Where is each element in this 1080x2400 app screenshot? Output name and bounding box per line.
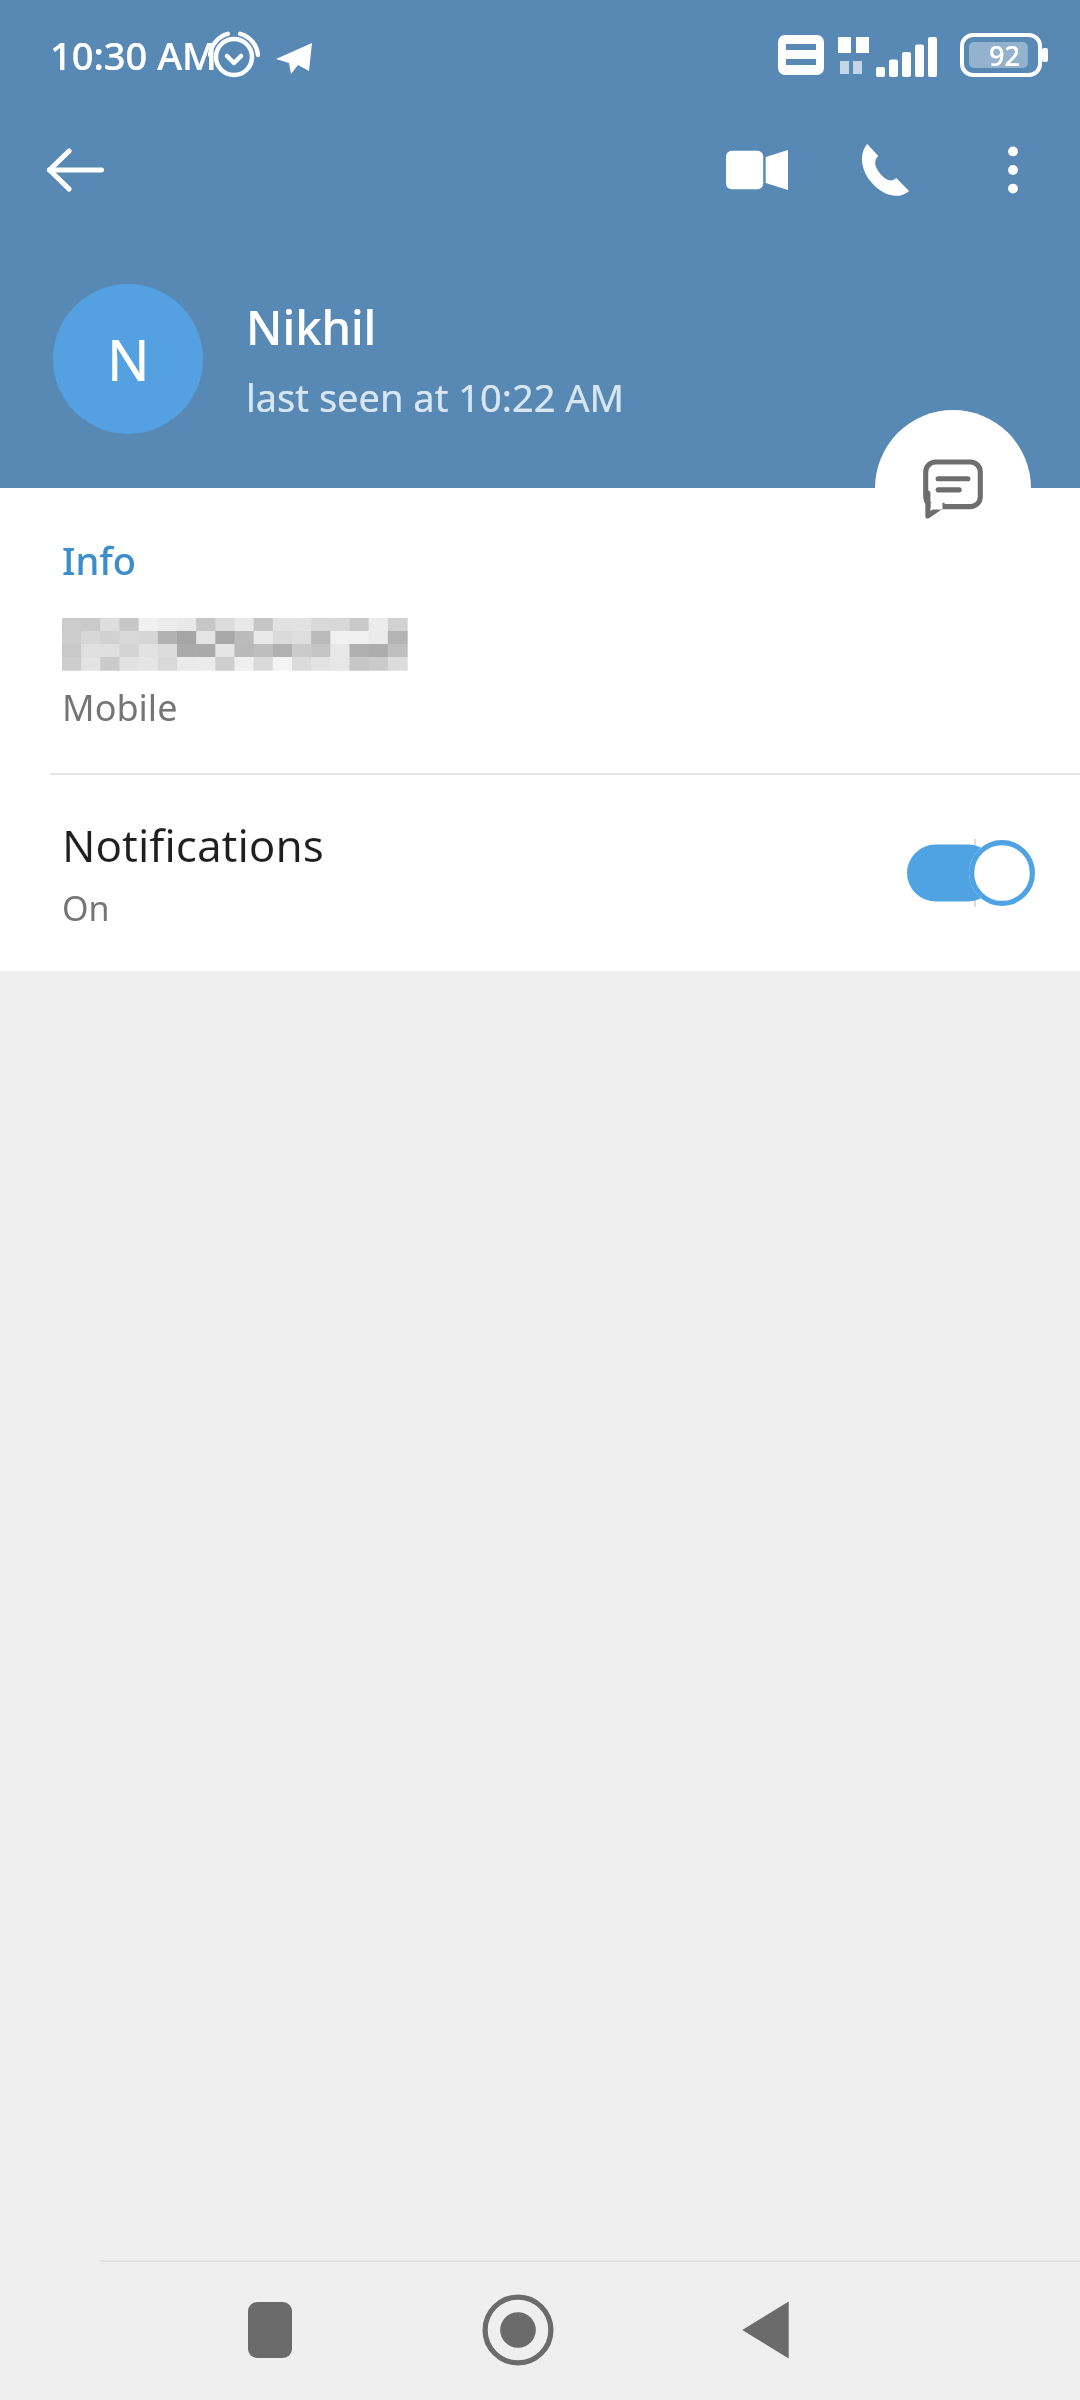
button[interactable]: Send message bbox=[875, 410, 1031, 566]
staticText: Nikhil bbox=[246, 295, 377, 359]
staticText: Mobile bbox=[62, 683, 178, 732]
staticText: Notifications bbox=[62, 815, 324, 875]
button[interactable]: Notifications bbox=[0, 775, 1080, 971]
button[interactable]: Back bbox=[20, 115, 130, 225]
button[interactable]: N bbox=[0, 230, 1080, 488]
staticText: last seen at 10:22 AM bbox=[246, 371, 625, 423]
staticText: N bbox=[107, 321, 150, 397]
staticText: 92 bbox=[989, 37, 1020, 74]
button[interactable]: Call bbox=[832, 115, 942, 225]
staticText: Info bbox=[62, 534, 137, 586]
button[interactable]: Back bbox=[686, 2260, 846, 2400]
button[interactable]: Home bbox=[438, 2260, 598, 2400]
button[interactable]: Recent apps bbox=[190, 2260, 350, 2400]
button[interactable]: More options bbox=[958, 115, 1068, 225]
button[interactable]: Notifications toggle bbox=[896, 818, 1046, 928]
staticText: 10:30 AM bbox=[50, 29, 217, 81]
button[interactable]: Video call bbox=[702, 115, 812, 225]
staticText: On bbox=[62, 885, 110, 931]
